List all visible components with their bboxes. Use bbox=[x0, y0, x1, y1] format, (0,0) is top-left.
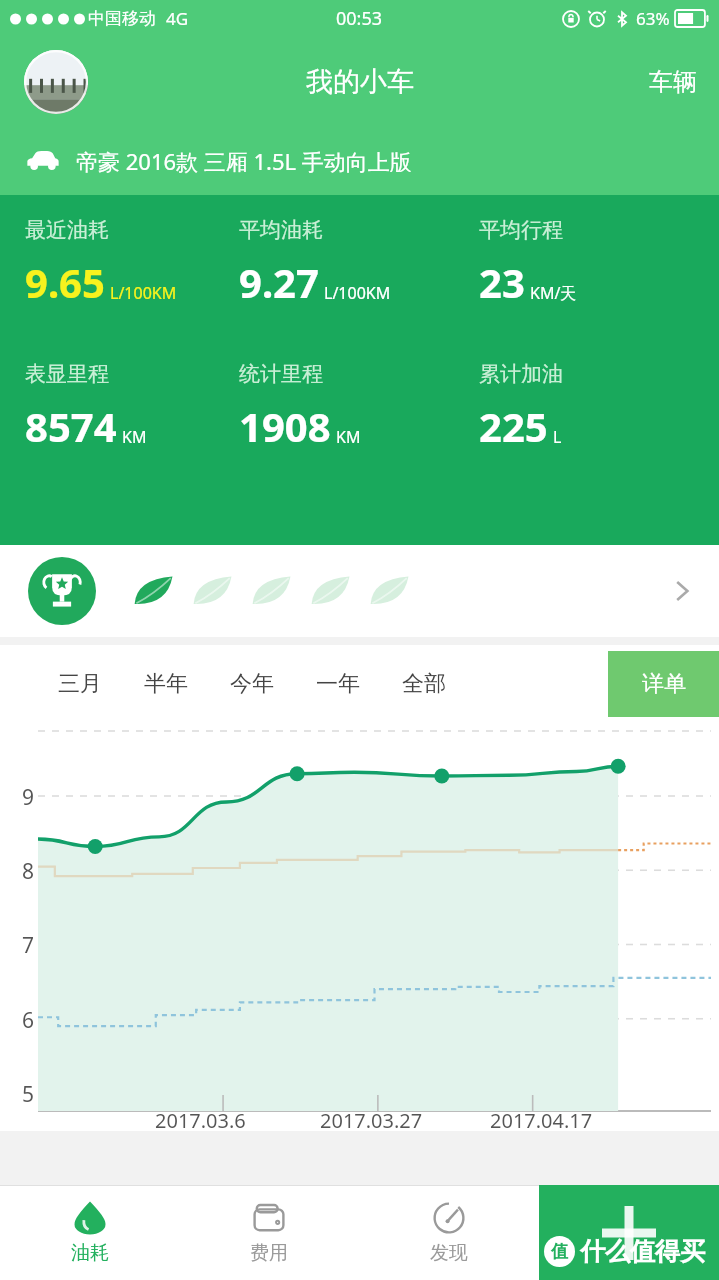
button[interactable]: 车辆 bbox=[627, 53, 719, 111]
button[interactable]: 帝豪 2016款 三厢 1.5L 手动向上版 bbox=[0, 128, 719, 194]
staticText: 什么值得买 bbox=[580, 1236, 705, 1267]
staticText: 帝豪 2016款 三厢 1.5L 手动向上版 bbox=[76, 146, 412, 176]
button[interactable] bbox=[0, 545, 719, 637]
staticText: 累计加油 bbox=[479, 361, 563, 387]
staticText: 2017.03.27 bbox=[320, 1107, 423, 1134]
staticText: 00:53 bbox=[336, 6, 383, 31]
staticText: L/100KM bbox=[110, 282, 177, 304]
button[interactable]: 发现 bbox=[359, 1185, 539, 1280]
staticText: 225 bbox=[479, 399, 548, 453]
staticText: 三月 bbox=[58, 670, 102, 698]
staticText: L/100KM bbox=[324, 282, 391, 304]
staticText: 8574 bbox=[25, 399, 117, 453]
button[interactable]: 油耗 bbox=[0, 1185, 179, 1280]
staticText: 统计里程 bbox=[239, 361, 323, 387]
button[interactable]: 全部 bbox=[388, 658, 460, 710]
staticText: 平均行程 bbox=[479, 217, 563, 243]
staticText: 4G bbox=[166, 7, 189, 30]
staticText: 平均油耗 bbox=[239, 217, 323, 243]
staticText: 今年 bbox=[230, 670, 274, 698]
staticText: 63% bbox=[636, 7, 670, 30]
staticText: 5 bbox=[22, 1080, 35, 1109]
staticText: 9.65 bbox=[25, 255, 105, 309]
staticText: 8 bbox=[22, 857, 35, 886]
button[interactable]: 今年 bbox=[216, 658, 288, 710]
button[interactable]: 最近油耗 bbox=[0, 217, 239, 309]
staticText: 2017.04.17 bbox=[490, 1107, 593, 1134]
staticText: 表显里程 bbox=[25, 361, 109, 387]
staticText: 9 bbox=[22, 783, 35, 812]
staticText: 9.27 bbox=[239, 255, 319, 309]
staticText: 我的小车 bbox=[306, 65, 414, 99]
staticText: 1908 bbox=[239, 399, 331, 453]
button[interactable]: 一年 bbox=[302, 658, 374, 710]
button[interactable]: 平均行程 bbox=[479, 217, 719, 309]
button[interactable]: 统计里程 bbox=[239, 361, 479, 453]
staticText: 2017.03.6 bbox=[155, 1107, 246, 1134]
staticText: 车辆 bbox=[649, 67, 697, 97]
button[interactable]: 详单 bbox=[608, 651, 719, 717]
button[interactable]: 费用 bbox=[179, 1185, 359, 1280]
staticText: 23 bbox=[479, 255, 525, 309]
staticText: 全部 bbox=[402, 670, 446, 698]
staticText: KM bbox=[336, 426, 361, 448]
button[interactable]: Profile bbox=[24, 50, 88, 114]
staticText: 发现 bbox=[430, 1241, 468, 1265]
staticText: 6 bbox=[22, 1006, 35, 1035]
button[interactable]: 平均油耗 bbox=[239, 217, 479, 309]
staticText: 一年 bbox=[316, 670, 360, 698]
staticText: 油耗 bbox=[71, 1241, 109, 1265]
button[interactable]: Add record bbox=[539, 1185, 719, 1280]
staticText: 费用 bbox=[250, 1241, 288, 1265]
staticText: 值 bbox=[551, 1241, 568, 1262]
staticText: KM bbox=[122, 426, 147, 448]
button[interactable]: 半年 bbox=[130, 658, 202, 710]
staticText: 7 bbox=[22, 931, 35, 960]
staticText: KM/天 bbox=[530, 282, 577, 304]
staticText: 半年 bbox=[144, 670, 188, 698]
button[interactable]: 三月 bbox=[44, 658, 116, 710]
button[interactable]: 表显里程 bbox=[0, 361, 239, 453]
staticText: 详单 bbox=[642, 670, 686, 698]
staticText: 中国移动 bbox=[88, 8, 156, 29]
staticText: L bbox=[553, 426, 562, 448]
staticText: 最近油耗 bbox=[25, 217, 109, 243]
button[interactable]: 累计加油 bbox=[479, 361, 719, 453]
